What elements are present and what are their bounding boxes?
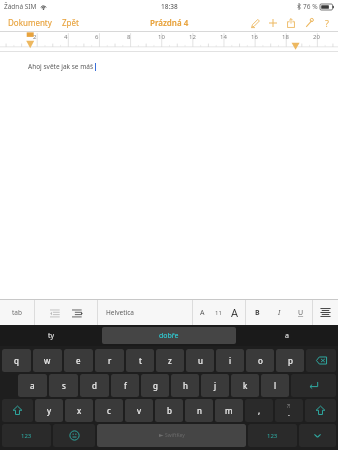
- button[interactable]: b: [155, 399, 183, 422]
- button[interactable]: I: [268, 300, 290, 325]
- button[interactable]: s: [49, 374, 78, 397]
- button[interactable]: z: [156, 349, 184, 372]
- staticText: g: [153, 380, 158, 391]
- staticText: Zpět: [62, 17, 79, 28]
- button[interactable]: e: [64, 349, 93, 372]
- button[interactable]: w: [33, 349, 62, 372]
- staticText: ,: [258, 405, 261, 416]
- button[interactable]: Insert: [266, 16, 279, 29]
- button[interactable]: Emoji: [53, 424, 95, 447]
- staticText: 2: [33, 33, 37, 41]
- button[interactable]: k: [231, 374, 259, 397]
- button[interactable]: ty: [0, 325, 102, 346]
- button[interactable]: Shift: [2, 399, 33, 422]
- staticText: Žádná SIM: [4, 2, 37, 11]
- staticText: p: [288, 355, 293, 366]
- button[interactable]: Alignment: [313, 300, 338, 325]
- staticText: 6: [95, 33, 99, 41]
- button[interactable]: j: [201, 374, 229, 397]
- button[interactable]: ,: [245, 399, 273, 422]
- button[interactable]: u: [186, 349, 214, 372]
- staticText: B: [255, 308, 260, 318]
- button[interactable]: l: [261, 374, 289, 397]
- button[interactable]: B: [246, 300, 268, 325]
- staticText: j: [214, 380, 217, 391]
- staticText: 11: [215, 309, 222, 317]
- staticText: Helvetica: [106, 308, 134, 317]
- staticText: 20: [313, 33, 320, 41]
- button[interactable]: Increase indent: [66, 304, 88, 322]
- button[interactable]: o: [246, 349, 274, 372]
- button[interactable]: Font size: [211, 300, 225, 325]
- staticText: 76 %: [303, 2, 318, 11]
- staticText: ?: [325, 17, 329, 29]
- button[interactable]: d: [80, 374, 109, 397]
- button[interactable]: Markup: [248, 16, 261, 29]
- staticText: A: [231, 305, 239, 320]
- staticText: f: [124, 380, 127, 391]
- staticText: Dokumenty: [8, 17, 52, 28]
- staticText: 123: [21, 432, 32, 440]
- staticText: tab: [12, 308, 22, 317]
- button[interactable]: Shift: [305, 399, 336, 422]
- button[interactable]: q: [2, 349, 31, 372]
- button[interactable]: Help: [320, 16, 333, 29]
- staticText: U: [298, 308, 304, 318]
- button[interactable]: Decrease font size: [193, 300, 211, 325]
- staticText: u: [198, 355, 203, 366]
- staticText: 14: [220, 33, 227, 41]
- staticText: dobře: [159, 331, 179, 341]
- staticText: i: [229, 355, 232, 366]
- staticText: 4: [64, 33, 68, 41]
- button[interactable]: n: [185, 399, 213, 422]
- button[interactable]: dobře: [102, 327, 236, 344]
- button[interactable]: r: [95, 349, 124, 372]
- staticText: k: [243, 380, 248, 391]
- button[interactable]: a: [18, 374, 47, 397]
- staticText: d: [92, 380, 97, 391]
- button[interactable]: f: [111, 374, 139, 397]
- staticText: 16: [251, 33, 258, 41]
- button[interactable]: Decrease indent: [44, 304, 66, 322]
- staticText: ty: [48, 331, 55, 341]
- staticText: .: [288, 409, 290, 419]
- button[interactable]: h: [171, 374, 199, 397]
- button[interactable]: v: [125, 399, 153, 422]
- staticText: s: [62, 380, 66, 391]
- button[interactable]: a: [236, 325, 338, 346]
- button[interactable]: Increase font size: [225, 300, 245, 325]
- staticText: e: [76, 355, 81, 366]
- button[interactable]: Backspace: [306, 349, 336, 372]
- button[interactable]: Hide keyboard: [299, 424, 336, 447]
- button[interactable]: 123: [2, 424, 51, 447]
- button[interactable]: m: [215, 399, 243, 422]
- button[interactable]: U: [290, 300, 312, 325]
- button[interactable]: y: [35, 399, 63, 422]
- button[interactable]: tab: [0, 300, 34, 325]
- button[interactable]: i: [216, 349, 244, 372]
- staticText: A: [200, 308, 205, 318]
- button[interactable]: t: [126, 349, 154, 372]
- staticText: 10: [158, 33, 165, 41]
- staticText: 12: [189, 33, 196, 41]
- button[interactable]: p: [276, 349, 304, 372]
- staticText: y: [47, 405, 52, 416]
- staticText: I: [278, 308, 281, 318]
- button[interactable]: Tools: [302, 16, 315, 29]
- button[interactable]: x: [65, 399, 93, 422]
- button[interactable]: c: [95, 399, 123, 422]
- staticText: SwiftKey: [165, 432, 185, 439]
- button[interactable]: Share: [284, 16, 297, 29]
- button[interactable]: 123: [248, 424, 297, 447]
- button[interactable]: Zpět: [60, 15, 81, 30]
- staticText: n: [197, 405, 202, 416]
- staticText: h: [183, 380, 188, 391]
- button[interactable]: Dokumenty: [6, 15, 54, 30]
- button[interactable]: ?!: [275, 399, 303, 422]
- button[interactable]: Enter: [291, 374, 336, 397]
- staticText: z: [168, 355, 172, 366]
- button[interactable]: g: [141, 374, 169, 397]
- staticText: Ahoj světe jak se máš: [28, 62, 94, 71]
- button[interactable]: Helvetica: [98, 300, 192, 325]
